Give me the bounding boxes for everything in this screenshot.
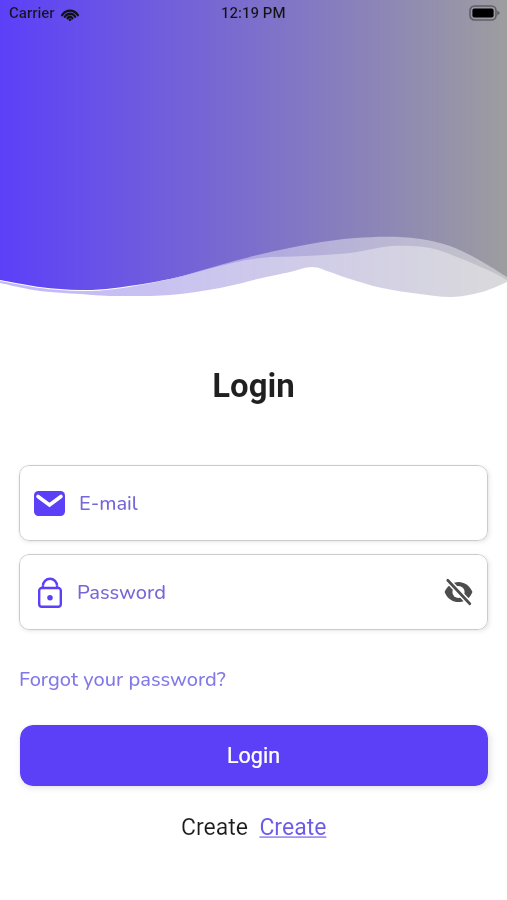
- staticText: Login: [227, 743, 281, 768]
- staticText: Forgot your password?: [19, 666, 226, 693]
- staticText: Carrier: [9, 4, 55, 22]
- button[interactable]: E-mail: [19, 465, 488, 541]
- button[interactable]: Show password: [434, 568, 482, 616]
- staticText: Create Create: [181, 814, 327, 841]
- staticText: E-mail: [79, 490, 138, 517]
- staticText: Password: [77, 579, 166, 606]
- button[interactable]: Login: [20, 725, 488, 786]
- staticText: 12:19 PM: [221, 4, 286, 22]
- button[interactable]: Forgot your password?: [19, 666, 226, 693]
- button[interactable]: Password: [19, 554, 488, 630]
- staticText: Login: [0, 366, 507, 405]
- button[interactable]: Create Create: [181, 814, 327, 841]
